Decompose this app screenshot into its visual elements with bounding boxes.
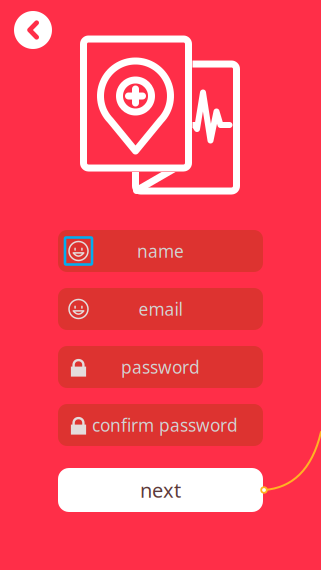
button[interactable]: password [58,346,263,388]
staticText: email [138,297,182,320]
button[interactable]: name [58,230,263,272]
button[interactable]: email [58,288,263,330]
staticText: confirm password [92,413,238,436]
button[interactable]: Back [11,8,55,52]
button[interactable]: confirm password [58,404,263,446]
button[interactable]: next [58,468,263,512]
staticText: next [140,477,181,503]
staticText: name [137,239,184,262]
staticText: password [121,355,200,378]
